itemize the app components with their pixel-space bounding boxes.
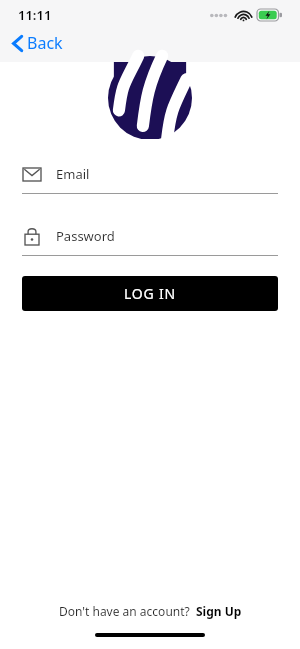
staticText: 11:11 bbox=[18, 6, 52, 24]
staticText: Email bbox=[56, 165, 90, 183]
staticText: Back bbox=[27, 32, 63, 54]
staticText: Password bbox=[56, 227, 115, 245]
button[interactable]: Sign Up bbox=[196, 603, 242, 619]
button[interactable]: LOG IN bbox=[22, 276, 278, 311]
staticText: Don't have an account? bbox=[59, 603, 190, 619]
other: Password bbox=[25, 227, 39, 245]
button[interactable]: Back bbox=[6, 29, 69, 57]
staticText: Sign Up bbox=[196, 603, 242, 619]
other: Email bbox=[23, 168, 41, 181]
button[interactable]: Password bbox=[22, 226, 278, 256]
button[interactable]: Email bbox=[22, 164, 278, 194]
staticText: LOG IN bbox=[124, 284, 177, 303]
